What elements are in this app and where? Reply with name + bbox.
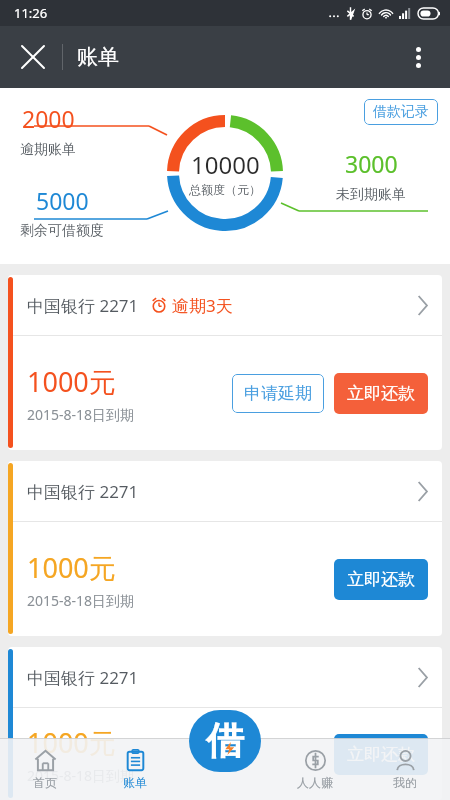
staticText: 1000元	[27, 724, 116, 761]
button[interactable]: 人人赚	[270, 738, 360, 800]
button[interactable]: 我的	[360, 738, 450, 800]
button[interactable]: 立即还款	[334, 734, 428, 775]
staticText: 2015-8-18日到期	[27, 405, 135, 424]
staticText: 人人赚	[297, 775, 333, 790]
button[interactable]: 立即还款	[334, 559, 428, 600]
staticText: 借	[206, 717, 244, 765]
staticText: 中国银行 2271	[27, 480, 139, 503]
button[interactable]: 中国银行 2271	[8, 275, 442, 450]
staticText: 11:26	[14, 4, 48, 22]
staticText: 剩余可借额度	[20, 222, 104, 240]
staticText: 2015-8-18日到期	[27, 591, 135, 610]
staticText: 总额度（元）	[189, 182, 261, 197]
button[interactable]: 立即还款	[334, 373, 428, 414]
button[interactable]: 借款记录	[364, 99, 438, 125]
button[interactable]: Close	[8, 32, 58, 82]
staticText: 申请延期	[244, 383, 312, 404]
staticText: 逾期账单	[20, 141, 76, 159]
button[interactable]: 首页	[0, 738, 90, 800]
staticText: 我的	[393, 775, 417, 790]
staticText: 2015-8-18日到期	[27, 766, 135, 785]
staticText: 立即还款	[347, 569, 415, 590]
staticText: 中国银行 2271	[27, 666, 139, 689]
staticText: 10000	[191, 148, 260, 181]
staticText: 1000元	[27, 549, 116, 586]
button[interactable]: More options	[394, 33, 442, 81]
button[interactable]: 中国银行 2271	[8, 461, 442, 636]
staticText: 账单	[123, 775, 147, 790]
staticText: 1000元	[27, 363, 116, 400]
staticText: 逾期3天	[172, 294, 233, 317]
staticText: 立即还款	[347, 383, 415, 404]
staticText: 2000	[22, 103, 75, 134]
staticText: 账单	[77, 44, 119, 70]
staticText: 借款记录	[373, 103, 429, 121]
staticText: 首页	[33, 775, 57, 790]
staticText: 立即还款	[347, 744, 415, 765]
staticText: 5000	[36, 185, 89, 216]
staticText: 3000	[345, 148, 398, 179]
button[interactable]: 账单	[90, 738, 180, 800]
staticText: 未到期账单	[336, 186, 406, 204]
button[interactable]: 借 Borrow	[189, 710, 261, 772]
staticText: 中国银行 2271	[27, 294, 139, 317]
button[interactable]: 中国银行 2271	[8, 647, 442, 800]
button[interactable]: 申请延期	[232, 374, 324, 413]
